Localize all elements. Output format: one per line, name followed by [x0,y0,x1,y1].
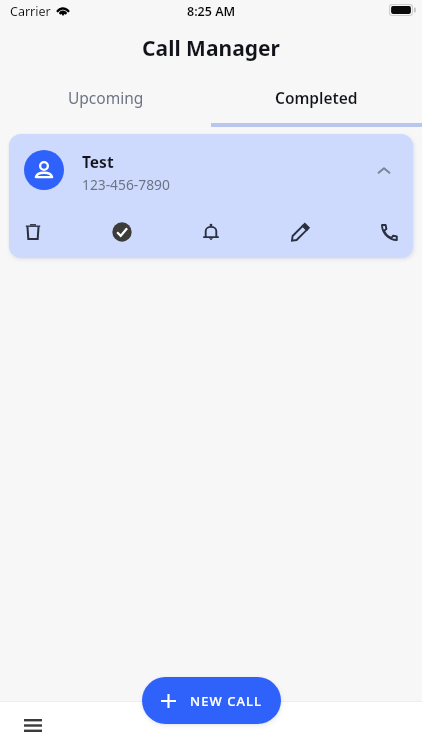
button[interactable]: Call [367,210,411,254]
staticText: Completed [275,87,358,108]
button[interactable]: Completed [211,74,422,127]
button[interactable]: Delete [11,210,55,254]
staticText: Upcoming [68,87,144,108]
button[interactable]: Collapse [361,148,405,192]
staticText: Test [82,151,114,172]
staticText: 8:25 AM [187,3,236,20]
button[interactable]: Edit [278,210,322,254]
staticText: NEW CALL [190,692,262,710]
button[interactable]: Remind [189,210,233,254]
button[interactable]: NEW CALL [142,677,281,724]
button[interactable]: Upcoming [0,74,211,127]
button[interactable]: Test [9,134,413,258]
staticText: Carrier [10,3,51,20]
button[interactable]: Complete [100,210,144,254]
staticText: 123-456-7890 [82,175,170,194]
button[interactable]: Menu [14,706,54,746]
staticText: Call Manager [142,34,280,63]
